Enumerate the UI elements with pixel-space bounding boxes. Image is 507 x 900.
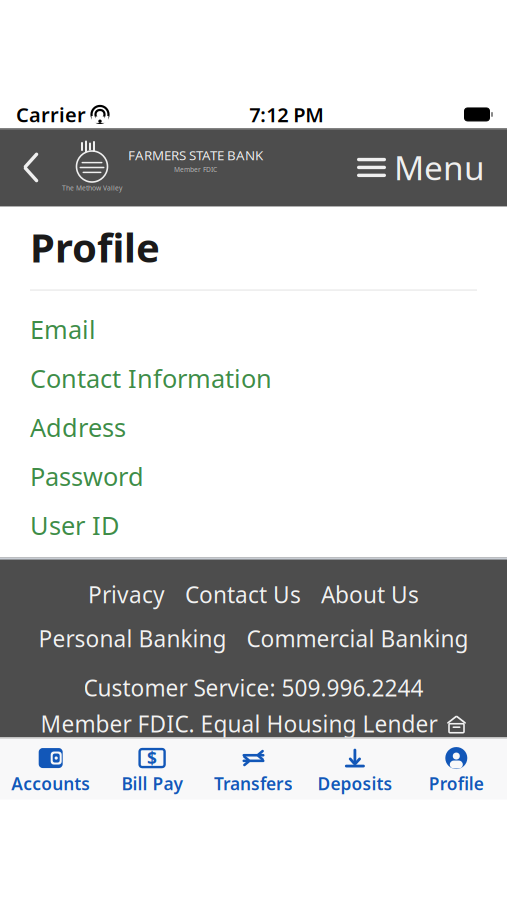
button[interactable]: Contact Information (0, 354, 507, 403)
staticText: Password (30, 459, 144, 493)
staticText: Bill Pay (122, 772, 183, 795)
staticText: Member FDIC. Equal Housing Lender (40, 709, 437, 739)
staticText: Carrier (16, 101, 86, 128)
button[interactable]: Back (0, 128, 62, 206)
staticText: Privacy (88, 579, 165, 609)
staticText: $ (147, 746, 157, 769)
staticText: Address (30, 410, 126, 444)
staticText: Menu (394, 145, 485, 190)
button[interactable]: Commercial Banking (236, 618, 478, 659)
staticText: FARMERS STATE BANK (128, 146, 263, 164)
button[interactable]: Contact Us (175, 574, 311, 614)
staticText: Email (30, 312, 96, 346)
staticText: Personal Banking (38, 623, 226, 654)
staticText: The Methow Valley (62, 183, 122, 192)
button[interactable]: Transfers (203, 741, 304, 801)
staticText: Contact Us (185, 579, 301, 609)
staticText: Member FDIC (174, 165, 217, 174)
button[interactable]: Privacy (78, 574, 175, 614)
button[interactable]: Address (0, 403, 507, 452)
staticText: Accounts (11, 772, 90, 795)
staticText: Deposits (317, 772, 392, 795)
button[interactable]: Personal Banking (28, 618, 236, 659)
staticText: Profile (429, 772, 484, 795)
button[interactable]: Menu (357, 128, 507, 206)
staticText: User ID (30, 508, 119, 542)
button[interactable]: Password (0, 452, 507, 501)
staticText: 7:12 PM (249, 101, 324, 128)
button[interactable]: $ (101, 741, 203, 801)
staticText: About Us (321, 579, 419, 609)
button[interactable]: Accounts (0, 741, 101, 801)
staticText: Profile (30, 220, 160, 273)
button[interactable]: About Us (311, 574, 429, 614)
button[interactable]: Profile (406, 741, 507, 801)
button[interactable]: Email (0, 305, 507, 354)
button[interactable]: User ID (0, 501, 507, 550)
staticText: Commercial Banking (246, 623, 468, 654)
staticText: Transfers (214, 772, 293, 795)
staticText: Contact Information (30, 361, 272, 395)
button[interactable]: Deposits (304, 741, 406, 801)
staticText: Customer Service: 509.996.2244 (83, 673, 423, 703)
